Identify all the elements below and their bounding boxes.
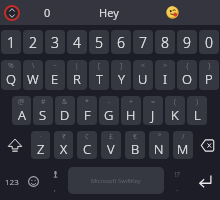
staticText: Microsoft SwiftKey (91, 177, 141, 185)
staticText: * (85, 97, 89, 107)
staticText: - (108, 97, 111, 107)
staticText: N (154, 140, 164, 158)
button[interactable]: { (177, 60, 197, 90)
staticText: 3 (51, 33, 59, 52)
button[interactable]: - (99, 96, 119, 125)
staticText: + (129, 97, 133, 107)
button[interactable]: 0 (199, 30, 219, 54)
staticText: [ (98, 61, 101, 71)
staticText: & (62, 97, 68, 107)
staticText: K (171, 106, 179, 124)
staticText: ] (120, 61, 123, 71)
staticText: X (60, 140, 68, 158)
staticText: 6 (117, 33, 125, 52)
button[interactable]: Backspace (195, 131, 220, 159)
button[interactable]: ¢ (77, 131, 97, 159)
button[interactable]: 5 (89, 30, 109, 54)
staticText: ° (158, 132, 161, 142)
button[interactable]: & (55, 96, 75, 125)
button[interactable]: £ (101, 131, 121, 159)
staticText: Z (37, 140, 45, 158)
button[interactable]: 2 (23, 30, 43, 54)
staticText: A (18, 106, 26, 124)
button[interactable]: [ (89, 60, 109, 90)
button[interactable]: ( (165, 96, 185, 125)
button[interactable]: Voice input (42, 159, 68, 200)
staticText: | (75, 61, 79, 71)
button[interactable]: Microsoft SwiftKey (68, 167, 164, 194)
staticText: I (163, 70, 168, 88)
staticText: Q (6, 70, 16, 88)
staticText: 0 (44, 5, 51, 20)
staticText: G (104, 106, 114, 124)
button[interactable]: 6 (111, 30, 131, 54)
staticText: ) (196, 97, 198, 107)
button[interactable]: Shift (0, 131, 29, 159)
staticText: J (151, 106, 155, 124)
staticText: ~ (53, 61, 57, 71)
button[interactable]: / (173, 131, 193, 159)
staticText: < (141, 61, 145, 71)
button[interactable]: Hey (72, 0, 146, 25)
staticText: 9 (183, 33, 191, 52)
button[interactable]: Emoji suggestion (146, 0, 198, 25)
button[interactable]: Emoji (24, 159, 42, 200)
staticText: S (39, 106, 47, 124)
button[interactable]: 7 (133, 30, 153, 54)
staticText: 0 (205, 33, 213, 52)
staticText: D (60, 106, 70, 124)
staticText: , (54, 182, 56, 193)
staticText: = (151, 97, 155, 107)
staticText: !? (175, 170, 180, 180)
button[interactable]: + (121, 96, 141, 125)
button[interactable]: € (125, 131, 145, 159)
button[interactable]: ₹ (54, 131, 73, 159)
button[interactable]: } (199, 60, 219, 90)
button[interactable]: 0 (23, 0, 72, 25)
button[interactable]: % (1, 60, 21, 90)
button[interactable]: 123 (0, 159, 24, 200)
staticText: W (27, 70, 39, 88)
button[interactable]: ° (149, 131, 169, 159)
button[interactable]: | (67, 60, 87, 90)
staticText: 1 (7, 33, 15, 52)
staticText: ¢ (85, 132, 89, 142)
button[interactable]: < (133, 60, 153, 90)
button[interactable]: ) (187, 96, 207, 125)
staticText: > (163, 61, 167, 71)
staticText: 123 (5, 176, 19, 187)
button[interactable]: ] (111, 60, 131, 90)
button[interactable]: 3 (45, 30, 65, 54)
staticText: # (41, 97, 46, 107)
button[interactable]: · (31, 131, 50, 159)
staticText: € (133, 132, 137, 142)
button[interactable]: = (143, 96, 163, 125)
button[interactable]: * (77, 96, 97, 125)
button[interactable]: Enter (190, 159, 220, 200)
staticText: M (177, 140, 189, 158)
staticText: £ (109, 132, 113, 142)
button[interactable]: # (33, 96, 53, 125)
staticText: U (138, 70, 148, 88)
staticText: T (96, 70, 103, 88)
button[interactable]: 1 (1, 30, 21, 54)
button[interactable]: @ (12, 96, 31, 125)
button[interactable]: \ (23, 60, 43, 90)
button[interactable]: Expand toolbar (0, 0, 23, 25)
button[interactable]: > (155, 60, 175, 90)
staticText: ( (174, 97, 176, 107)
button[interactable]: 9 (177, 30, 197, 54)
staticText: % (8, 61, 14, 71)
button[interactable]: !? (164, 159, 190, 200)
staticText: . (176, 181, 179, 193)
button[interactable]: ~ (45, 60, 65, 90)
staticText: \ (32, 61, 35, 71)
button[interactable]: 4 (67, 30, 87, 54)
staticText: C (83, 140, 92, 158)
button[interactable]: 8 (155, 30, 175, 54)
staticText: · (40, 132, 42, 142)
staticText: E (51, 70, 59, 88)
staticText: O (182, 70, 192, 88)
staticText: ₹ (62, 132, 66, 142)
staticText: 8 (161, 33, 169, 52)
